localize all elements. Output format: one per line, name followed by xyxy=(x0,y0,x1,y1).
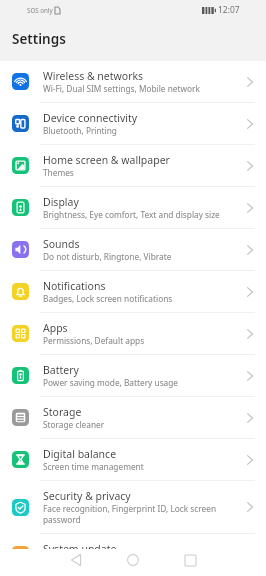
staticText: Storage cleaner xyxy=(43,419,105,430)
button[interactable]: Home screen & wallpaper xyxy=(0,145,266,186)
button[interactable]: Storage xyxy=(0,397,266,438)
staticText: Face recognition, Fingerprint ID, Lock s… xyxy=(43,503,241,525)
button[interactable]: System update xyxy=(0,534,266,575)
button[interactable]: Device connectivity xyxy=(0,103,266,144)
staticText: Download and install xyxy=(43,556,125,567)
staticText: Device connectivity xyxy=(43,111,138,125)
staticText: Brightness, Eye comfort, Text and displa… xyxy=(43,209,220,220)
staticText: SOS only xyxy=(27,6,53,14)
staticText: Storage xyxy=(43,405,82,419)
staticText: Apps xyxy=(43,321,68,335)
staticText: Do not disturb, Ringtone, Vibrate xyxy=(43,251,172,262)
button[interactable]: Digital balance xyxy=(0,439,266,480)
button[interactable]: Recents xyxy=(177,549,203,571)
staticText: Digital balance xyxy=(43,447,117,461)
staticText: Bluetooth, Printing xyxy=(43,125,117,136)
button[interactable]: Back xyxy=(63,549,89,571)
button[interactable]: Security & privacy xyxy=(0,481,266,533)
staticText: System update xyxy=(43,542,117,556)
button[interactable]: Apps xyxy=(0,313,266,354)
staticText: Permissions, Default apps xyxy=(43,335,145,346)
staticText: Wi-Fi, Dual SIM settings, Mobile network xyxy=(43,83,200,94)
button[interactable]: Wireless & networks xyxy=(0,61,266,102)
button[interactable]: Display xyxy=(0,187,266,228)
staticText: Display xyxy=(43,195,79,209)
staticText: Battery xyxy=(43,363,79,377)
staticText: Badges, Lock screen notifications xyxy=(43,293,173,304)
staticText: Wireless & networks xyxy=(43,69,144,83)
staticText: Settings xyxy=(12,30,66,48)
staticText: Power saving mode, Battery usage xyxy=(43,377,179,388)
button[interactable]: Sounds xyxy=(0,229,266,270)
staticText: Home screen & wallpaper xyxy=(43,153,170,167)
staticText: Sounds xyxy=(43,237,80,251)
staticText: Themes xyxy=(43,167,74,178)
staticText: Screen time management xyxy=(43,461,144,472)
button[interactable]: Battery xyxy=(0,355,266,396)
staticText: Notifications xyxy=(43,279,106,293)
staticText: 12:07 xyxy=(218,4,240,16)
staticText: Security & privacy xyxy=(43,489,131,503)
button[interactable]: Home xyxy=(120,549,146,571)
button[interactable]: Notifications xyxy=(0,271,266,312)
